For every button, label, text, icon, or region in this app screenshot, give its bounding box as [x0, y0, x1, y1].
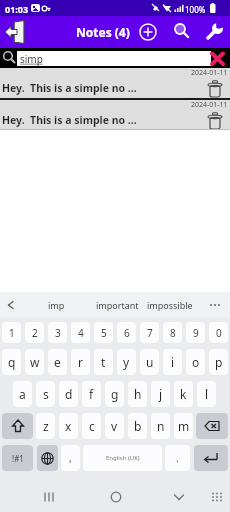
button[interactable] [4, 20, 30, 44]
staticText: impossible [147, 299, 193, 311]
staticText: f [89, 386, 94, 402]
button[interactable]: impossible [141, 292, 199, 318]
staticText: a [19, 386, 26, 402]
button[interactable]: 6 [117, 322, 136, 343]
button[interactable] [2, 413, 33, 439]
staticText: imp [48, 299, 65, 311]
button[interactable] [139, 23, 157, 41]
staticText: n [157, 418, 165, 434]
staticText: 9 [193, 326, 199, 340]
button[interactable]: b [128, 413, 147, 439]
button[interactable]: 1 [2, 322, 21, 343]
button[interactable]: e [48, 349, 67, 375]
staticText: w [30, 354, 40, 370]
button[interactable]: g [105, 381, 124, 407]
button[interactable]: d [59, 381, 78, 407]
button[interactable] [210, 491, 224, 503]
button[interactable]: !#1 [2, 445, 33, 471]
button[interactable]: 2024-01-11 [0, 68, 230, 100]
button[interactable]: v [105, 413, 124, 439]
staticText: English (UK) [106, 454, 140, 462]
button[interactable] [42, 490, 58, 504]
staticText: p [215, 354, 223, 370]
staticText: !#1 [12, 453, 24, 464]
button[interactable]: , [61, 445, 80, 471]
button[interactable] [7, 301, 15, 309]
button[interactable]: . [165, 445, 190, 471]
staticText: y [123, 354, 130, 370]
button[interactable]: m [174, 413, 193, 439]
staticText: j [159, 386, 163, 402]
staticText: 0 [216, 326, 222, 340]
button[interactable] [206, 80, 224, 98]
staticText: b [134, 418, 142, 434]
staticText: 2024-01-11 [191, 68, 228, 78]
button[interactable]: u [140, 349, 159, 375]
button[interactable]: important [88, 292, 146, 318]
staticText: e [54, 354, 61, 370]
button[interactable]: t [94, 349, 113, 375]
button[interactable] [173, 22, 191, 40]
button[interactable]: n [151, 413, 170, 439]
staticText: l [205, 386, 209, 402]
button[interactable]: f [82, 381, 101, 407]
button[interactable] [196, 413, 228, 439]
staticText: simp [20, 52, 43, 66]
staticText: 2024-01-11 [191, 100, 228, 110]
staticText: important [96, 299, 139, 311]
button[interactable] [206, 112, 224, 130]
button[interactable] [210, 51, 226, 66]
button[interactable] [204, 292, 226, 318]
staticText: z [43, 418, 49, 434]
button[interactable]: r [71, 349, 90, 375]
button[interactable]: English (UK) [83, 445, 162, 471]
button[interactable]: 8 [163, 322, 182, 343]
button[interactable] [172, 490, 186, 504]
button[interactable]: z [36, 413, 55, 439]
staticText: 5 [101, 326, 107, 340]
button[interactable]: 4 [71, 322, 90, 343]
staticText: g [111, 386, 119, 402]
staticText: d [65, 386, 73, 402]
staticText: 100% [185, 4, 206, 15]
staticText: s [43, 386, 49, 402]
button[interactable]: l [197, 381, 216, 407]
button[interactable]: p [209, 349, 228, 375]
staticText: u [146, 354, 154, 370]
button[interactable]: c [82, 413, 101, 439]
button[interactable]: s [36, 381, 55, 407]
button[interactable]: o [186, 349, 205, 375]
staticText: 6 [124, 326, 130, 340]
staticText: 4 [78, 326, 84, 340]
staticText: c [89, 418, 95, 434]
button[interactable]: imp [40, 292, 72, 318]
button[interactable]: x [59, 413, 78, 439]
button[interactable]: 5 [94, 322, 113, 343]
staticText: h [134, 386, 142, 402]
button[interactable] [108, 489, 124, 505]
button[interactable]: h [128, 381, 147, 407]
button[interactable] [37, 445, 58, 471]
button[interactable]: 9 [186, 322, 205, 343]
button[interactable]: i [163, 349, 182, 375]
button[interactable]: q [2, 349, 21, 375]
button[interactable]: j [151, 381, 170, 407]
button[interactable]: 3 [48, 322, 67, 343]
button[interactable]: w [25, 349, 44, 375]
button[interactable]: 7 [140, 322, 159, 343]
staticText: k [180, 386, 187, 402]
button[interactable]: y [117, 349, 136, 375]
button[interactable]: 2024-01-11 [0, 100, 230, 130]
button[interactable]: k [174, 381, 193, 407]
staticText: m [178, 418, 190, 434]
staticText: , [69, 451, 72, 465]
button[interactable]: 2 [25, 322, 44, 343]
button[interactable]: a [13, 381, 32, 407]
staticText: 1 [9, 326, 15, 340]
staticText: Hey. This is a simple no ... [2, 81, 137, 95]
staticText: i [171, 354, 175, 370]
button[interactable]: simp [17, 51, 211, 66]
button[interactable] [204, 22, 224, 42]
button[interactable] [194, 445, 228, 471]
button[interactable]: 0 [209, 322, 228, 343]
